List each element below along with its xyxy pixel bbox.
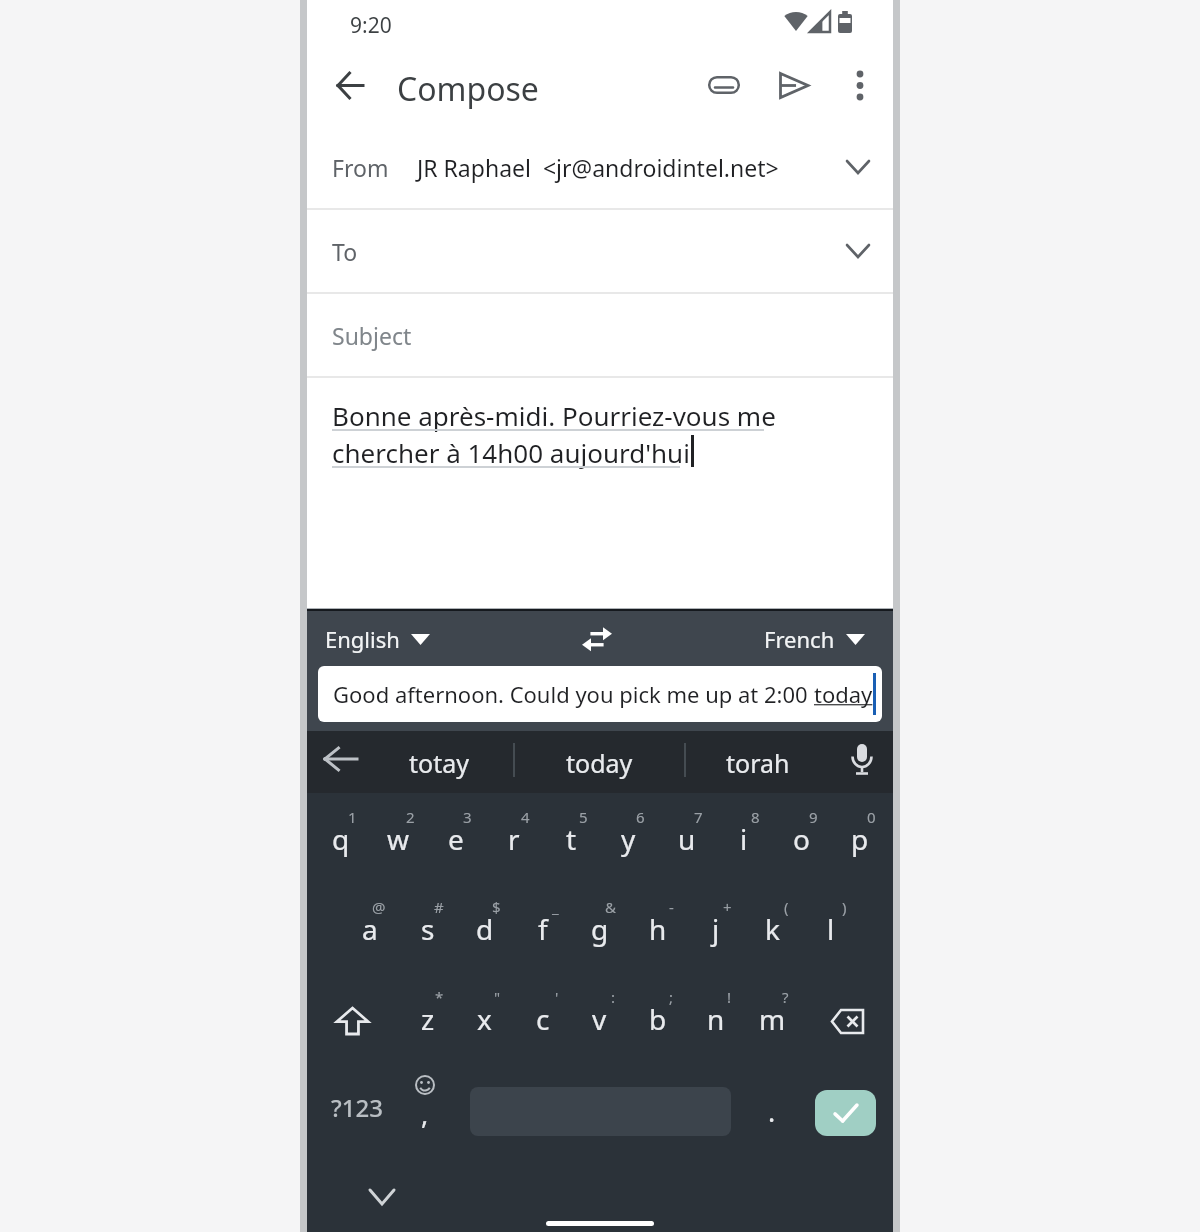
staticText: _ [552,897,559,917]
button[interactable]: totay [397,733,481,793]
staticText: , [421,1095,429,1132]
button[interactable]: @ [341,893,398,973]
button[interactable]: & [571,893,628,973]
staticText: ' [555,987,559,1007]
staticText: w [387,820,410,858]
staticText: today [566,746,633,780]
staticText: o [793,820,810,858]
staticText: k [765,910,780,948]
button[interactable]: 2 [370,803,427,883]
button[interactable]: * [399,983,456,1063]
staticText: p [851,820,869,858]
button[interactable] [708,76,740,94]
staticText: y [621,820,636,858]
staticText: @ [372,897,386,917]
staticText: h [649,910,667,948]
button[interactable]: ) [802,893,859,973]
button[interactable]: ?123 [327,1081,387,1133]
button[interactable]: , [402,1073,450,1129]
button[interactable]: ! [687,983,744,1063]
button[interactable]: 5 [543,803,600,883]
button[interactable] [846,70,874,102]
staticText: m [759,1000,786,1038]
staticText: a [362,910,378,948]
staticText: To [332,236,358,267]
button[interactable]: . [747,1083,797,1139]
staticText: j [712,910,720,948]
staticText: 0 [867,807,876,827]
button[interactable]: From [307,126,893,208]
button[interactable]: _ [514,893,571,973]
staticText: 7 [694,807,703,827]
staticText: l [827,910,835,948]
button[interactable]: Subject [307,294,893,376]
staticText: + [723,897,732,917]
button[interactable]: English [325,624,430,654]
button[interactable]: Bonne après-midi. Pourriez-vous me [307,378,893,470]
button[interactable] [326,61,374,109]
button[interactable]: 0 [831,803,888,883]
button[interactable]: 3 [427,803,484,883]
staticText: Compose [397,67,539,111]
button[interactable]: today [557,733,641,793]
staticText: 8 [751,807,760,827]
button[interactable]: ; [629,983,686,1063]
button[interactable] [848,744,876,777]
staticText: $ [492,897,501,917]
button[interactable]: torah [716,733,800,793]
button[interactable]: 1 [312,803,369,883]
button[interactable] [325,748,357,770]
staticText: & [605,897,616,917]
staticText: 4 [521,807,530,827]
button[interactable]: Good afternoon. Could you pick me up at … [318,666,882,722]
staticText: ! [727,987,732,1007]
staticText: Subject [332,320,412,351]
staticText: Good afternoon. Could you pick me up at … [333,679,814,709]
button[interactable] [370,1190,394,1204]
button[interactable]: - [629,893,686,973]
staticText: i [740,820,748,858]
staticText: 9 [809,807,818,827]
button[interactable] [831,1009,864,1034]
staticText: torah [726,746,790,780]
staticText: c [536,1000,550,1038]
button[interactable]: + [687,893,744,973]
button[interactable]: $ [456,893,513,973]
staticText: t [566,820,577,858]
button[interactable]: ' [514,983,571,1063]
button[interactable]: To [307,210,893,292]
staticText: f [538,910,548,948]
staticText: English [325,624,400,654]
staticText: today [814,679,873,709]
button[interactable]: French [764,624,865,654]
button[interactable]: 7 [658,803,715,883]
staticText: v [592,1000,607,1038]
button[interactable]: ( [744,893,801,973]
button[interactable]: 4 [485,803,542,883]
button[interactable]: ? [744,983,801,1063]
button[interactable]: # [399,893,456,973]
button[interactable] [338,73,363,98]
button[interactable] [582,627,612,651]
staticText: " [494,987,501,1007]
button[interactable]: " [456,983,513,1063]
button[interactable]: 8 [715,803,772,883]
button[interactable]: 9 [773,803,830,883]
button[interactable] [779,72,810,99]
staticText: s [421,910,435,948]
button[interactable]: 6 [600,803,657,883]
button[interactable] [815,1090,876,1136]
staticText: q [332,820,350,858]
staticText: 2 [406,807,415,827]
staticText: e [448,820,464,858]
staticText: 5 [579,807,588,827]
staticText: g [591,910,609,948]
staticText: : [611,987,616,1007]
staticText: totay [409,746,469,780]
staticText: n [707,1000,725,1038]
button[interactable] [336,1007,369,1035]
staticText: # [434,897,444,917]
button[interactable]: : [571,983,628,1063]
staticText: * [435,987,444,1007]
